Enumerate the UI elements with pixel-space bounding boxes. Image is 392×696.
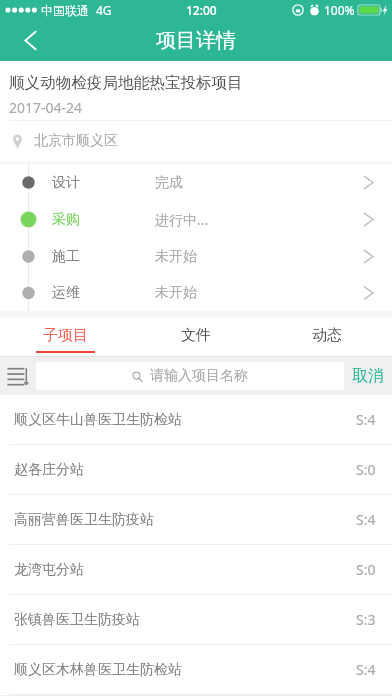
button[interactable]: 顺义区木林兽医卫生防检站	[0, 645, 392, 694]
button[interactable]: Sort	[0, 357, 36, 395]
button[interactable]: 子项目	[0, 318, 130, 356]
staticText: 运维	[52, 284, 155, 302]
staticText: 施工	[52, 248, 155, 266]
staticText: 请输入项目名称	[150, 367, 248, 385]
button[interactable]: 取消	[344, 357, 392, 395]
staticText: 高丽营兽医卫生防疫站	[14, 511, 356, 529]
button[interactable]: 请输入项目名称	[36, 362, 344, 390]
button[interactable]: 采购	[0, 201, 392, 238]
staticText: 100%	[324, 2, 355, 18]
staticText: 子项目	[43, 326, 88, 345]
staticText: S:0	[356, 560, 376, 579]
button[interactable]: 动态	[261, 318, 392, 356]
button[interactable]: 施工	[0, 238, 392, 275]
staticText: 未开始	[155, 248, 364, 266]
staticText: 顺义区牛山兽医卫生防检站	[14, 411, 356, 429]
button[interactable]: 运维	[0, 275, 392, 311]
staticText: 4G	[96, 2, 112, 18]
staticText: 设计	[52, 174, 155, 192]
button[interactable]: 顺义区牛山兽医卫生防检站	[0, 395, 392, 444]
staticText: 进行中...	[155, 210, 364, 229]
staticText: 完成	[155, 174, 364, 192]
staticText: 张镇兽医卫生防疫站	[14, 611, 356, 629]
button[interactable]: 龙湾屯分站	[0, 545, 392, 594]
staticText: S:4	[356, 510, 376, 529]
staticText: S:4	[356, 660, 376, 679]
staticText: S:0	[356, 460, 376, 479]
staticText: S:3	[356, 610, 376, 629]
staticText: 赵各庄分站	[14, 461, 356, 479]
staticText: 未开始	[155, 284, 364, 302]
button[interactable]: 赵各庄分站	[0, 445, 392, 494]
staticText: 取消	[352, 366, 384, 386]
staticText: 文件	[181, 326, 211, 345]
button[interactable]: 文件	[130, 318, 261, 356]
button[interactable]: Back	[0, 20, 48, 61]
staticText: 12:00	[186, 2, 217, 18]
staticText: 2017-04-24	[9, 98, 83, 117]
staticText: 顺义区木林兽医卫生防检站	[14, 661, 356, 679]
staticText: S:4	[356, 410, 376, 429]
staticText: 中国联通	[41, 3, 89, 18]
staticText: 北京市顺义区	[34, 132, 118, 150]
staticText: 采购	[52, 211, 155, 229]
button[interactable]: 设计	[0, 164, 392, 201]
button[interactable]: 高丽营兽医卫生防疫站	[0, 495, 392, 544]
staticText: 顺义动物检疫局地能热宝投标项目	[9, 73, 243, 93]
staticText: 项目详情	[156, 28, 236, 53]
staticText: 动态	[312, 326, 342, 345]
button[interactable]: 张镇兽医卫生防疫站	[0, 595, 392, 644]
staticText: 龙湾屯分站	[14, 561, 356, 579]
